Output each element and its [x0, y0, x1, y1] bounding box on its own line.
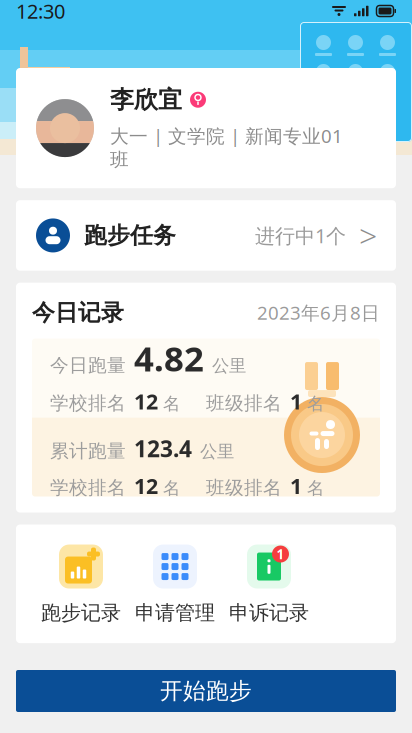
staticText: 12 [134, 472, 158, 500]
staticText: 12:30 [16, 0, 65, 24]
staticText: 开始跑步 [160, 677, 252, 705]
staticText: 12 [134, 387, 158, 415]
staticText: 大一 | 文学院 | 新闻专业01班 [110, 123, 343, 171]
staticText: 1 [276, 545, 284, 563]
staticText: 申诉记录 [229, 600, 309, 625]
staticText: 今日跑量 [50, 354, 126, 377]
staticText: 名 [163, 393, 180, 414]
staticText: 名 [163, 478, 180, 499]
button[interactable]: 开始跑步 [16, 670, 396, 712]
staticText: 123.4 [134, 433, 192, 464]
button[interactable]: 李欣宜 [16, 68, 396, 188]
staticText: 班级排名 [206, 476, 282, 499]
staticText: 名 [307, 478, 324, 499]
staticText: 4.82 [134, 335, 204, 381]
button[interactable]: 跑步任务 [16, 200, 396, 271]
staticText: 公里 [200, 441, 234, 462]
staticText: 跑步记录 [41, 600, 121, 625]
staticText: > [359, 214, 377, 257]
staticText: 学校排名 [50, 392, 126, 415]
staticText: 累计跑量 [50, 440, 126, 463]
staticText: 名 [307, 393, 324, 414]
staticText: 进行中1个 [255, 222, 346, 249]
staticText: 学校排名 [50, 476, 126, 499]
staticText: 跑步任务 [84, 221, 176, 249]
staticText: 2023年6月8日 [257, 300, 380, 325]
button[interactable]: 1 [222, 544, 316, 625]
staticText: 公里 [212, 355, 246, 376]
staticText: 1 [290, 387, 302, 415]
staticText: 申请管理 [135, 600, 215, 625]
staticText: 李欣宜 [110, 85, 182, 114]
staticText: 1 [290, 472, 302, 500]
button[interactable]: 申请管理 [128, 544, 222, 625]
staticText: 今日记录 [32, 299, 124, 326]
button[interactable]: 跑步记录 [34, 544, 128, 625]
staticText: 班级排名 [206, 392, 282, 415]
